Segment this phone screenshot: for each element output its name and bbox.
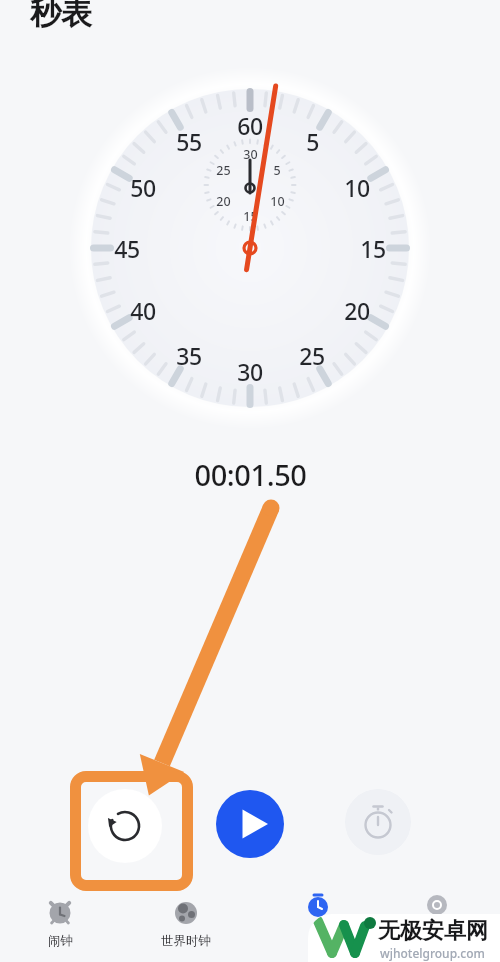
staticText: wjhotelgroup.com	[380, 945, 485, 961]
button[interactable]	[273, 893, 363, 955]
staticText: 55	[176, 126, 202, 157]
staticText: 30	[243, 146, 258, 163]
staticText: 45	[114, 233, 140, 264]
button[interactable]	[345, 789, 411, 855]
staticText: 40	[130, 295, 156, 326]
staticText: 25	[216, 162, 231, 179]
staticText: 15	[243, 208, 258, 225]
staticText: 20	[216, 193, 231, 210]
staticText: 10	[344, 172, 370, 203]
staticText: 35	[176, 340, 202, 371]
staticText: 世界时钟	[161, 933, 211, 949]
staticText: 闹钟	[48, 933, 73, 949]
staticText: 5	[306, 126, 319, 157]
staticText: 无极安卓网	[378, 917, 488, 945]
button[interactable]	[392, 893, 482, 955]
staticText: 20	[344, 295, 370, 326]
staticText: 25	[299, 340, 325, 371]
staticText: 30	[237, 356, 263, 387]
staticText: 60	[237, 110, 263, 141]
staticText: 15	[360, 233, 386, 264]
staticText: 10	[270, 193, 285, 210]
staticText: 秒表	[30, 0, 92, 33]
button[interactable]	[136, 893, 236, 955]
staticText: 00:01.50	[194, 455, 307, 494]
button[interactable]	[88, 789, 162, 863]
staticText: 50	[130, 172, 156, 203]
button[interactable]	[216, 790, 284, 858]
button[interactable]	[15, 893, 105, 955]
staticText: 5	[273, 162, 281, 179]
